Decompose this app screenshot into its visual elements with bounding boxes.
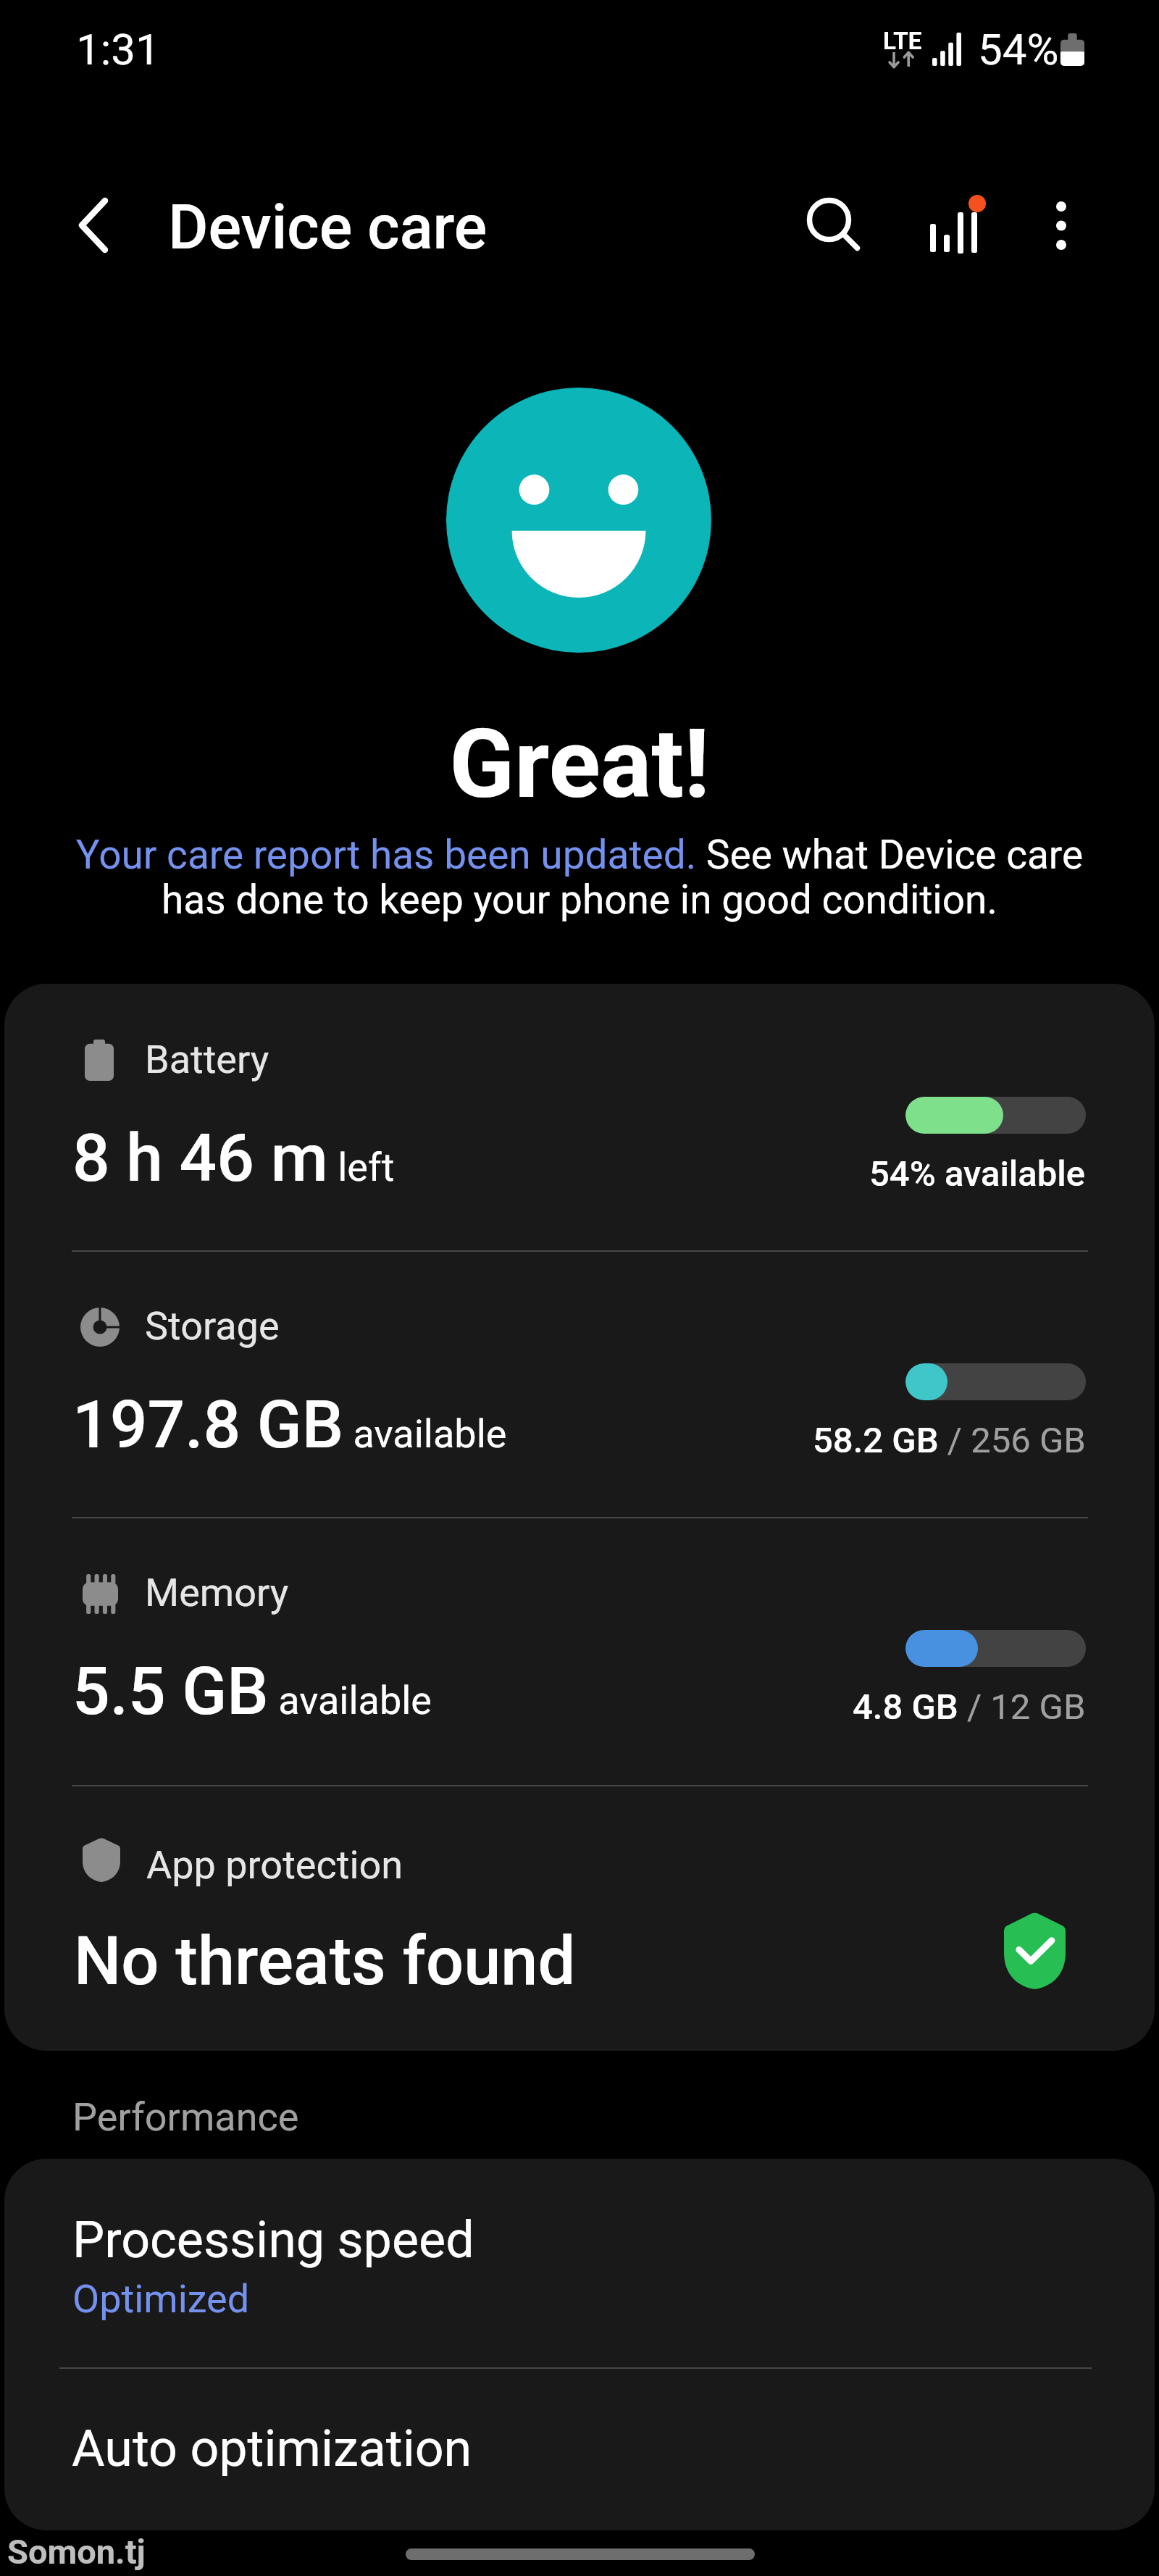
staticText: 54% available xyxy=(869,1153,1086,1195)
staticText: App protection xyxy=(146,1842,403,1888)
button[interactable]: Auto optimization xyxy=(4,2369,1155,2530)
staticText: No threats found xyxy=(74,1923,576,2001)
button[interactable]: Navigate up xyxy=(51,183,136,267)
staticText: 58.2 GB / 256 GB xyxy=(813,1420,1086,1461)
staticText: Great! xyxy=(0,708,1159,821)
staticText: Somon.tj xyxy=(7,2532,146,2572)
button[interactable]: Processing speed xyxy=(4,2159,1155,2367)
staticText: 8 h 46 m left xyxy=(72,1120,395,1197)
staticText: 5.5 GB available xyxy=(72,1653,432,1731)
staticText: Memory xyxy=(145,1570,289,1615)
button[interactable]: Battery xyxy=(4,984,1155,1250)
staticText: Auto optimization xyxy=(72,2419,472,2478)
button[interactable]: Search xyxy=(793,184,877,268)
staticText: Processing speed xyxy=(72,2210,474,2270)
button[interactable]: Usage statistics xyxy=(911,183,995,267)
staticText: 197.8 GB available xyxy=(72,1387,507,1464)
button[interactable]: Storage xyxy=(4,1250,1155,1517)
staticText: Performance xyxy=(72,2094,299,2140)
staticText: Your care report has been updated. See w… xyxy=(58,832,1101,924)
staticText: Device care xyxy=(168,191,488,264)
staticText: Optimized xyxy=(72,2276,250,2322)
staticText: Storage xyxy=(145,1303,280,1349)
staticText: Battery xyxy=(145,1037,269,1082)
staticText: 1:31 xyxy=(76,24,160,75)
button[interactable]: More options xyxy=(1019,183,1103,267)
staticText: LTE xyxy=(883,27,922,55)
staticText: 4.8 GB / 12 GB xyxy=(853,1686,1086,1728)
staticText: 54% xyxy=(978,24,1059,75)
button[interactable]: App protection xyxy=(4,1785,1155,2051)
button[interactable]: Memory xyxy=(4,1517,1155,1783)
